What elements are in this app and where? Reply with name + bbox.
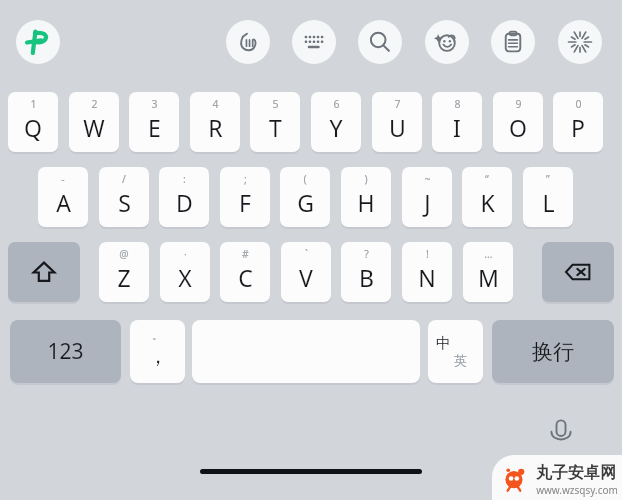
staticText: P bbox=[571, 112, 585, 143]
staticText: F bbox=[239, 187, 251, 218]
staticText: 。 bbox=[152, 328, 163, 342]
staticText: 8 bbox=[454, 97, 461, 111]
button[interactable]: ` bbox=[281, 242, 331, 302]
button[interactable]: 5 bbox=[250, 92, 300, 152]
staticText: 1 bbox=[30, 97, 37, 111]
staticText: W bbox=[83, 112, 105, 143]
staticText: L bbox=[542, 187, 555, 218]
staticText: : bbox=[183, 172, 186, 186]
staticText: Y bbox=[329, 112, 343, 143]
button[interactable]: 3 bbox=[129, 92, 179, 152]
button[interactable]: App logo bbox=[16, 20, 60, 64]
button[interactable]: ? bbox=[341, 242, 391, 302]
staticText: ) bbox=[364, 172, 368, 186]
button[interactable]: - bbox=[38, 167, 88, 227]
staticText: 123 bbox=[47, 337, 84, 366]
staticText: 英 bbox=[454, 352, 467, 368]
button[interactable]: Backspace bbox=[542, 242, 614, 302]
staticText: H bbox=[357, 187, 375, 218]
staticText: R bbox=[208, 112, 223, 143]
staticText: · bbox=[184, 247, 187, 261]
button[interactable]: ( bbox=[280, 167, 330, 227]
button[interactable]: 换行 bbox=[492, 320, 614, 383]
staticText: ( bbox=[303, 172, 307, 186]
button[interactable]: Handwriting bbox=[226, 20, 270, 64]
staticText: www.wzsqsy.com bbox=[536, 483, 618, 497]
staticText: T bbox=[269, 112, 282, 143]
staticText: ! bbox=[426, 247, 429, 261]
staticText: - bbox=[61, 172, 65, 186]
staticText: 换行 bbox=[532, 339, 574, 365]
staticText: M bbox=[478, 262, 499, 293]
staticText: / bbox=[122, 172, 126, 186]
staticText: N bbox=[418, 262, 436, 293]
staticText: ， bbox=[148, 344, 168, 369]
staticText: 中 bbox=[436, 334, 451, 353]
button[interactable]: 8 bbox=[432, 92, 482, 152]
staticText: B bbox=[359, 262, 374, 293]
button[interactable]: ) bbox=[341, 167, 391, 227]
staticText: ; bbox=[244, 172, 247, 186]
staticText: 3 bbox=[151, 97, 158, 111]
button[interactable]: Chinese English toggle bbox=[428, 320, 483, 383]
staticText: X bbox=[178, 262, 192, 293]
staticText: U bbox=[389, 112, 406, 143]
button[interactable]: ~ bbox=[402, 167, 452, 227]
button[interactable]: Voice input bbox=[558, 20, 602, 64]
button[interactable]: Keyboard bbox=[292, 20, 336, 64]
button[interactable]: Clipboard bbox=[491, 20, 535, 64]
button[interactable]: · bbox=[160, 242, 210, 302]
staticText: Z bbox=[117, 262, 131, 293]
staticText: 丸子安卓网 bbox=[536, 463, 616, 483]
button[interactable]: 1 bbox=[8, 92, 58, 152]
button[interactable]: ” bbox=[523, 167, 573, 227]
button[interactable]: @ bbox=[99, 242, 149, 302]
button[interactable]: 9 bbox=[493, 92, 543, 152]
button[interactable]: 0 bbox=[553, 92, 603, 152]
staticText: ? bbox=[364, 247, 369, 261]
staticText: I bbox=[453, 112, 461, 143]
staticText: @ bbox=[119, 247, 129, 261]
staticText: C bbox=[238, 262, 253, 293]
staticText: Q bbox=[24, 112, 42, 143]
button[interactable]: 7 bbox=[372, 92, 422, 152]
button[interactable]: Emoji bbox=[425, 20, 469, 64]
staticText: 4 bbox=[212, 97, 219, 111]
staticText: # bbox=[242, 247, 249, 261]
staticText: D bbox=[176, 187, 193, 218]
button[interactable]: Shift bbox=[8, 242, 80, 302]
staticText: “ bbox=[485, 172, 489, 186]
button[interactable]: ; bbox=[220, 167, 270, 227]
staticText: V bbox=[299, 262, 313, 293]
button[interactable]: 。 bbox=[130, 320, 185, 383]
staticText: ” bbox=[546, 172, 550, 186]
staticText: 5 bbox=[272, 97, 279, 111]
staticText: O bbox=[509, 112, 527, 143]
staticText: K bbox=[480, 187, 495, 218]
button[interactable]: ! bbox=[402, 242, 452, 302]
staticText: G bbox=[297, 187, 314, 218]
button[interactable]: 2 bbox=[69, 92, 119, 152]
button[interactable]: # bbox=[220, 242, 270, 302]
staticText: S bbox=[118, 187, 131, 218]
staticText: 7 bbox=[394, 97, 401, 111]
staticText: ~ bbox=[424, 172, 431, 186]
button[interactable]: Search bbox=[358, 20, 402, 64]
button[interactable]: “ bbox=[462, 167, 512, 227]
staticText: 6 bbox=[333, 97, 340, 111]
button[interactable]: : bbox=[159, 167, 209, 227]
staticText: A bbox=[56, 187, 71, 218]
button[interactable]: / bbox=[99, 167, 149, 227]
button[interactable]: Microphone bbox=[540, 412, 582, 454]
staticText: 0 bbox=[575, 97, 582, 111]
staticText: 2 bbox=[91, 97, 98, 111]
staticText: ` bbox=[305, 247, 308, 261]
staticText: 9 bbox=[515, 97, 522, 111]
staticText: … bbox=[484, 247, 493, 261]
button[interactable]: … bbox=[463, 242, 513, 302]
staticText: J bbox=[424, 187, 431, 218]
button[interactable]: 4 bbox=[190, 92, 240, 152]
button[interactable]: 123 bbox=[10, 320, 121, 383]
button[interactable]: 6 bbox=[311, 92, 361, 152]
